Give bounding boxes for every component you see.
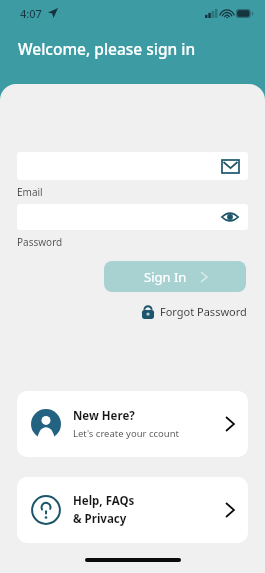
staticText: Welcome, please sign in	[18, 38, 196, 59]
other: Email	[222, 160, 239, 173]
button[interactable]: Forgot Password	[142, 304, 247, 319]
button[interactable]: Help, FAQs	[17, 477, 248, 543]
button[interactable]: Show password	[17, 204, 248, 230]
button[interactable]: Email	[17, 152, 248, 180]
staticText: Sign In	[144, 268, 187, 286]
button[interactable]: Sign In	[104, 261, 246, 292]
staticText: Forgot Password	[160, 304, 247, 319]
staticText: 4:07	[20, 6, 42, 21]
staticText: New Here?	[73, 408, 135, 424]
other: Show password	[221, 211, 239, 223]
staticText: Email	[17, 185, 43, 199]
staticText: Password	[17, 235, 63, 249]
staticText: & Privacy	[73, 511, 127, 527]
button[interactable]: New Here?	[17, 391, 248, 457]
staticText: Let's create your ccount	[73, 427, 179, 440]
staticText: Help, FAQs	[73, 493, 135, 509]
